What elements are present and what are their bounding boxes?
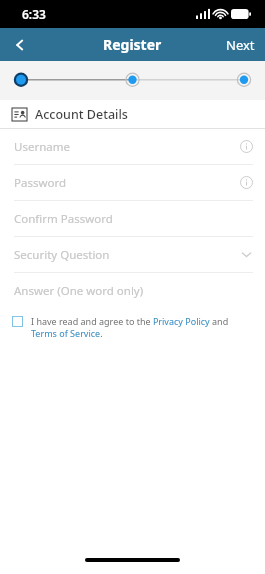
staticText: Account Details (35, 106, 128, 123)
staticText: Next (226, 36, 255, 54)
button[interactable]: Username (0, 129, 265, 165)
button[interactable]: Security Question (0, 237, 265, 273)
staticText: Register (103, 35, 162, 54)
button[interactable]: Answer (One word only) (0, 273, 265, 308)
staticText: Confirm Password (14, 211, 253, 227)
staticText: Username (14, 139, 240, 155)
staticText: Security Question (14, 247, 240, 263)
button[interactable]: Confirm Password (0, 201, 265, 237)
button[interactable]: Password (0, 165, 265, 201)
button[interactable]: Back (0, 28, 40, 61)
staticText: Answer (One word only) (14, 283, 253, 299)
button[interactable]: I have read and agree to the Privacy Pol… (0, 311, 265, 346)
staticText: Password (14, 175, 240, 191)
staticText: 6:33 (22, 6, 46, 22)
staticText: I have read and agree to the Privacy Pol… (31, 315, 249, 340)
button[interactable]: Next (216, 30, 265, 60)
